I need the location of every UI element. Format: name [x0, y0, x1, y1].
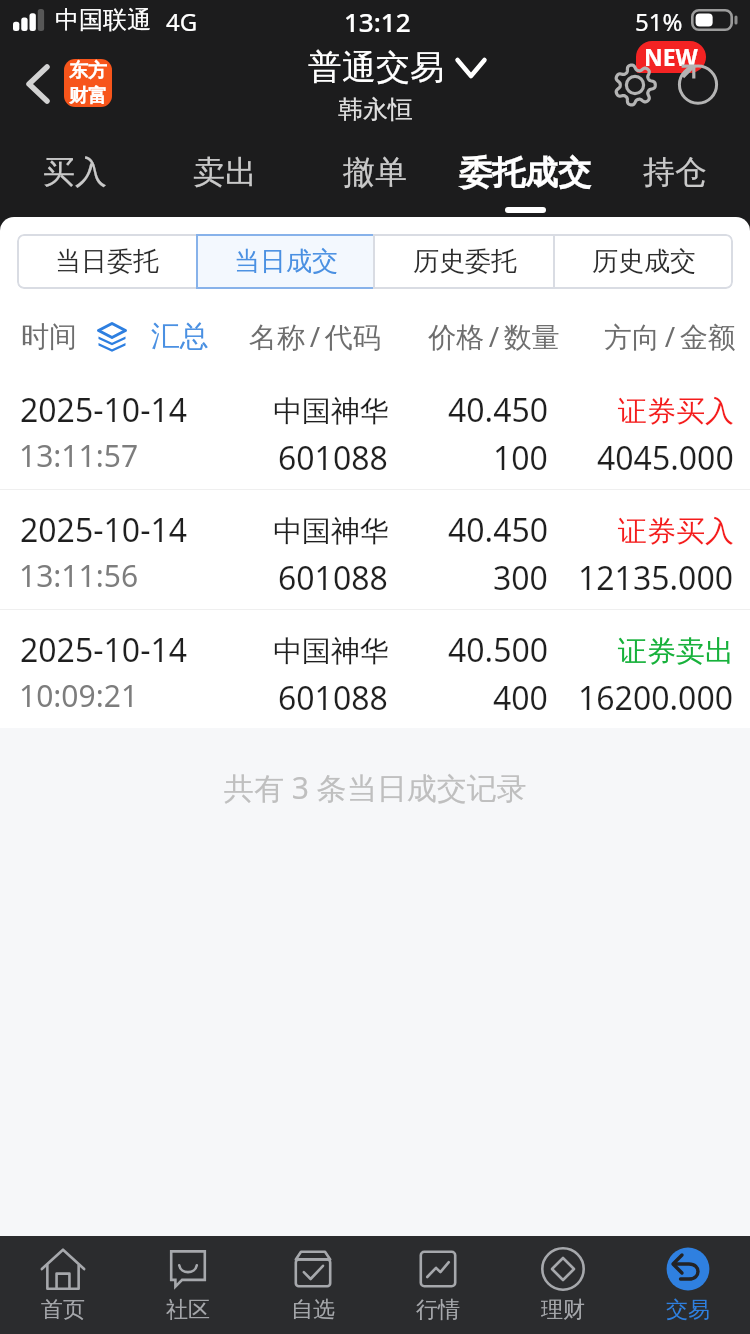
button[interactable]: 持仓 — [600, 131, 750, 217]
button[interactable]: 理财 — [500, 1236, 625, 1334]
staticText: 2025-10-14 — [20, 628, 188, 672]
button[interactable]: 卖出 — [150, 131, 300, 217]
staticText: 中国神华 — [273, 393, 389, 430]
staticText: 13:11:57 — [19, 435, 139, 476]
staticText: 首页 — [41, 1296, 85, 1324]
staticText: 社区 — [166, 1296, 210, 1324]
staticText: 4045.000 — [597, 436, 734, 480]
staticText: 交易 — [666, 1296, 710, 1324]
staticText: 10:09:21 — [19, 675, 139, 716]
staticText: 当日委托 — [55, 245, 159, 278]
staticText: 普通交易 — [308, 46, 444, 89]
button[interactable]: Open in browser — [668, 54, 728, 114]
button[interactable]: 当日委托 — [17, 234, 196, 289]
staticText: 13:12 — [344, 4, 411, 39]
staticText: 601088 — [278, 676, 388, 720]
staticText: 51% — [635, 5, 683, 38]
staticText: 300 — [493, 556, 548, 600]
button[interactable]: 首页 — [0, 1236, 125, 1334]
button[interactable]: 自选 — [250, 1236, 375, 1334]
button[interactable]: Back — [12, 58, 64, 110]
button[interactable]: 历史委托 — [375, 234, 554, 289]
button[interactable]: 普通交易 — [308, 46, 487, 89]
staticText: 40.450 — [448, 388, 549, 432]
button[interactable]: 历史成交 — [554, 234, 733, 289]
staticText: 历史成交 — [592, 245, 696, 278]
button[interactable]: Settings — [607, 57, 663, 113]
staticText: 601088 — [278, 556, 388, 600]
staticText: 16200.000 — [578, 676, 734, 720]
button[interactable]: 当日成交 — [196, 234, 375, 289]
staticText: 时间 — [21, 319, 77, 354]
staticText: 自选 — [291, 1296, 335, 1324]
button[interactable]: 买入 — [0, 131, 150, 217]
staticText: 东方 — [69, 59, 107, 83]
button[interactable]: 委托成交 — [450, 131, 600, 217]
button[interactable]: 社区 — [125, 1236, 250, 1334]
staticText: NEW — [644, 41, 698, 72]
staticText: 理财 — [541, 1296, 585, 1324]
staticText: 行情 — [416, 1296, 460, 1324]
staticText: 历史委托 — [413, 245, 517, 278]
staticText: 委托成交 — [459, 152, 591, 194]
staticText: 中国联通 — [55, 5, 151, 35]
staticText: 价格 / 数量 — [428, 317, 560, 355]
staticText: 12135.000 — [578, 556, 734, 600]
staticText: 撤单 — [343, 152, 407, 192]
staticText: 中国神华 — [273, 513, 389, 550]
staticText: 4G — [166, 5, 198, 38]
staticText: 持仓 — [643, 152, 707, 192]
staticText: 400 — [493, 676, 548, 720]
button[interactable]: 撤单 — [300, 131, 450, 217]
button[interactable]: 2025-10-14 — [0, 370, 750, 489]
staticText: 证券买入 — [618, 393, 734, 430]
staticText: 名称 / 代码 — [249, 317, 381, 355]
button[interactable]: 汇总 — [97, 318, 209, 355]
button[interactable]: 行情 — [375, 1236, 500, 1334]
staticText: 韩永恒 — [338, 94, 413, 125]
staticText: 当日成交 — [234, 245, 338, 278]
button[interactable]: 2025-10-14 — [0, 490, 750, 609]
staticText: 方向 / 金额 — [604, 317, 736, 355]
staticText: 601088 — [278, 436, 388, 480]
staticText: 2025-10-14 — [20, 508, 188, 552]
button[interactable]: 交易 — [625, 1236, 750, 1334]
staticText: 13:11:56 — [19, 555, 139, 596]
staticText: 40.450 — [448, 508, 549, 552]
button[interactable]: 2025-10-14 — [0, 610, 750, 728]
staticText: 汇总 — [151, 318, 209, 355]
staticText: 2025-10-14 — [20, 388, 188, 432]
staticText: 财富 — [69, 84, 107, 107]
staticText: 买入 — [43, 152, 107, 192]
staticText: 共有 3 条当日成交记录 — [224, 767, 527, 808]
staticText: 证券买入 — [618, 513, 734, 550]
staticText: 100 — [493, 436, 548, 480]
button[interactable]: East Money — [64, 59, 112, 107]
staticText: 40.500 — [448, 628, 549, 672]
staticText: 卖出 — [193, 152, 257, 192]
staticText: 中国神华 — [273, 633, 389, 670]
staticText: 证券卖出 — [618, 633, 734, 670]
